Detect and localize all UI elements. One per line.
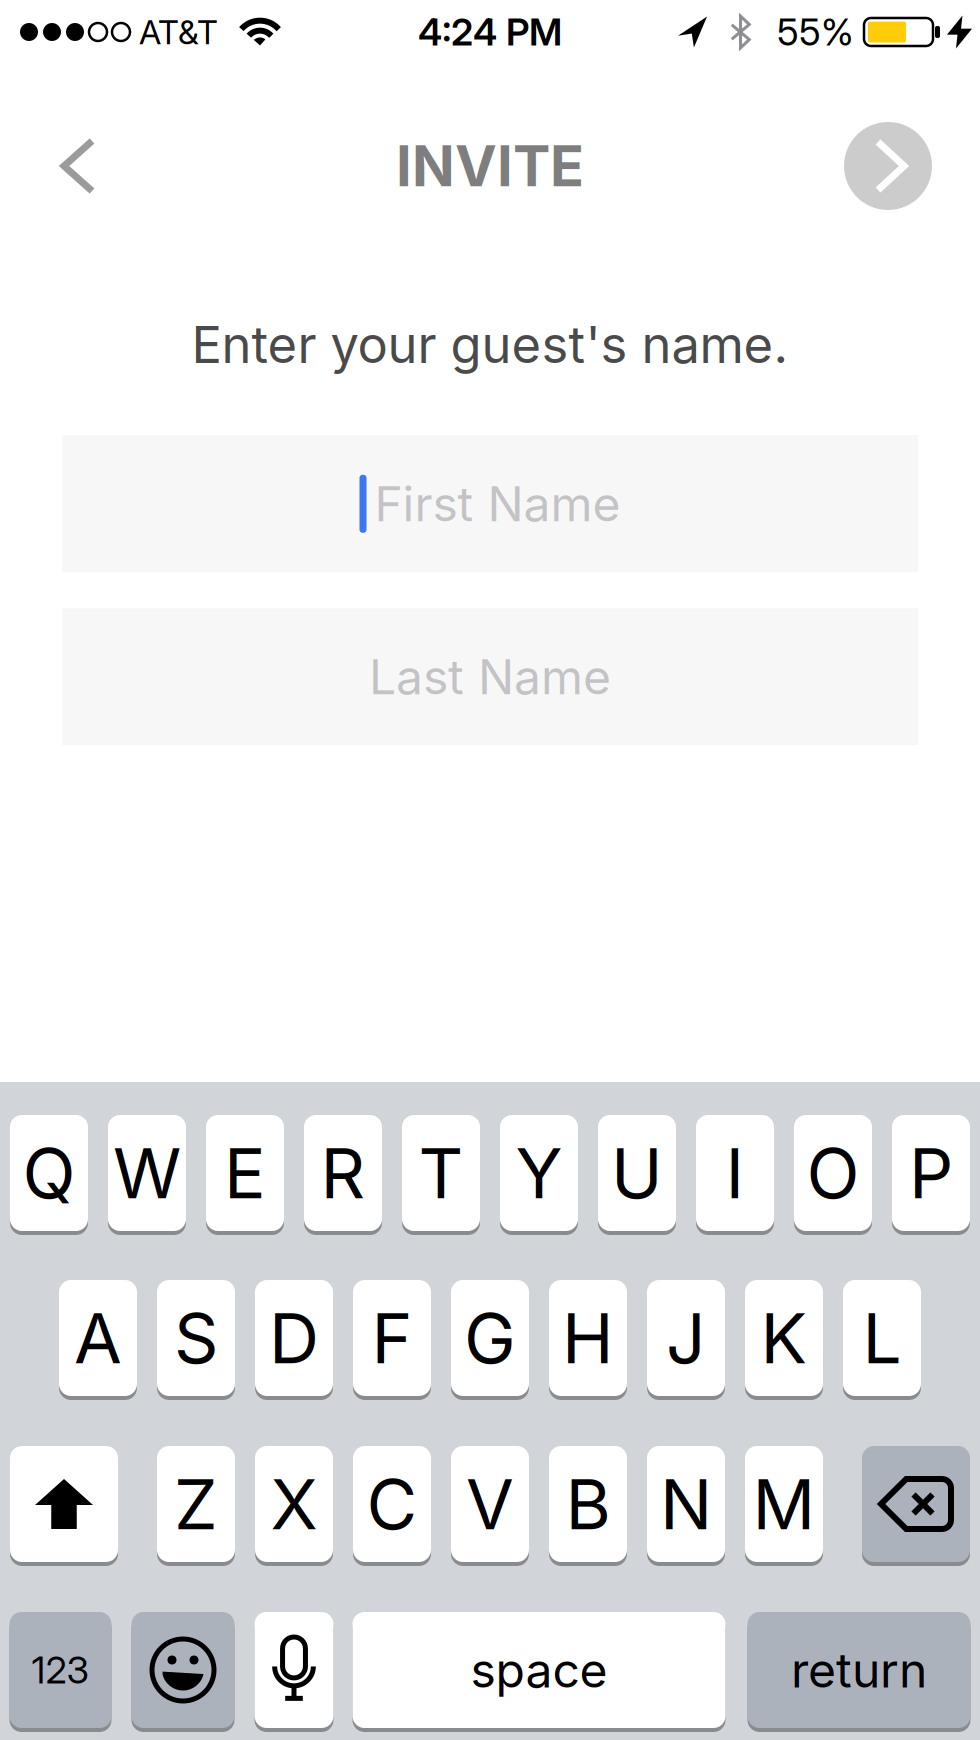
staticText: G — [464, 1296, 516, 1380]
button[interactable]: K — [745, 1280, 823, 1396]
staticText: L — [862, 1296, 901, 1380]
button[interactable]: P — [892, 1115, 970, 1231]
staticText: C — [366, 1462, 417, 1546]
button[interactable]: Back — [0, 123, 112, 209]
staticText: AT&T — [139, 12, 218, 52]
staticText: J — [666, 1296, 706, 1380]
staticText: M — [752, 1462, 815, 1546]
staticText: First Name — [374, 475, 620, 533]
staticText: S — [174, 1296, 218, 1380]
button[interactable]: Z — [157, 1446, 235, 1562]
staticText: Y — [515, 1131, 562, 1215]
staticText: F — [371, 1296, 412, 1380]
button[interactable]: Dictate — [254, 1612, 333, 1728]
staticText: space — [470, 1641, 607, 1699]
button[interactable]: L — [843, 1280, 921, 1396]
button[interactable]: C — [353, 1446, 431, 1562]
button[interactable]: Delete — [862, 1446, 970, 1562]
staticText: X — [270, 1462, 317, 1546]
button[interactable]: R — [304, 1115, 382, 1231]
staticText: Z — [174, 1462, 218, 1546]
button[interactable]: X — [255, 1446, 333, 1562]
button[interactable]: S — [157, 1280, 235, 1396]
staticText: K — [760, 1296, 807, 1380]
button[interactable]: First Name — [62, 435, 918, 572]
staticText: Enter your guest's name. — [191, 314, 788, 375]
button[interactable]: H — [549, 1280, 627, 1396]
staticText: INVITE — [396, 132, 584, 200]
button[interactable]: M — [745, 1446, 823, 1562]
staticText: N — [660, 1462, 712, 1546]
staticText: 4:24 PM — [418, 9, 562, 55]
staticText: V — [466, 1462, 514, 1546]
button[interactable]: B — [549, 1446, 627, 1562]
button[interactable]: Y — [500, 1115, 578, 1231]
staticText: I — [725, 1131, 744, 1215]
button[interactable]: U — [598, 1115, 676, 1231]
button[interactable]: I — [696, 1115, 774, 1231]
button[interactable]: Q — [10, 1115, 88, 1231]
staticText: T — [418, 1131, 463, 1215]
staticText: 123 — [31, 1647, 89, 1693]
button[interactable]: T — [402, 1115, 480, 1231]
staticText: Last Name — [369, 648, 611, 706]
staticText: U — [611, 1131, 663, 1215]
staticText: O — [806, 1131, 859, 1215]
button[interactable]: Last Name — [62, 608, 918, 745]
button[interactable]: W — [108, 1115, 186, 1231]
button[interactable]: F — [353, 1280, 431, 1396]
staticText: D — [269, 1296, 319, 1380]
staticText: A — [74, 1296, 122, 1380]
staticText: Q — [22, 1131, 75, 1215]
staticText: W — [113, 1131, 181, 1215]
button[interactable]: Numbers — [9, 1612, 111, 1728]
staticText: P — [909, 1131, 953, 1215]
button[interactable]: D — [255, 1280, 333, 1396]
button[interactable]: return — [747, 1612, 970, 1728]
button[interactable]: O — [794, 1115, 872, 1231]
staticText: H — [562, 1296, 614, 1380]
staticText: R — [320, 1131, 365, 1215]
button[interactable]: V — [451, 1446, 529, 1562]
button[interactable]: N — [647, 1446, 725, 1562]
button[interactable]: E — [206, 1115, 284, 1231]
button[interactable]: Next — [844, 122, 932, 210]
staticText: return — [791, 1641, 927, 1699]
staticText: B — [565, 1462, 610, 1546]
button[interactable]: Emoji — [131, 1612, 234, 1728]
button[interactable]: G — [451, 1280, 529, 1396]
button[interactable]: space — [352, 1612, 725, 1728]
staticText: 55% — [777, 9, 854, 55]
staticText: E — [224, 1131, 266, 1215]
button[interactable]: A — [59, 1280, 137, 1396]
button[interactable]: Shift — [10, 1446, 118, 1562]
button[interactable]: J — [647, 1280, 725, 1396]
